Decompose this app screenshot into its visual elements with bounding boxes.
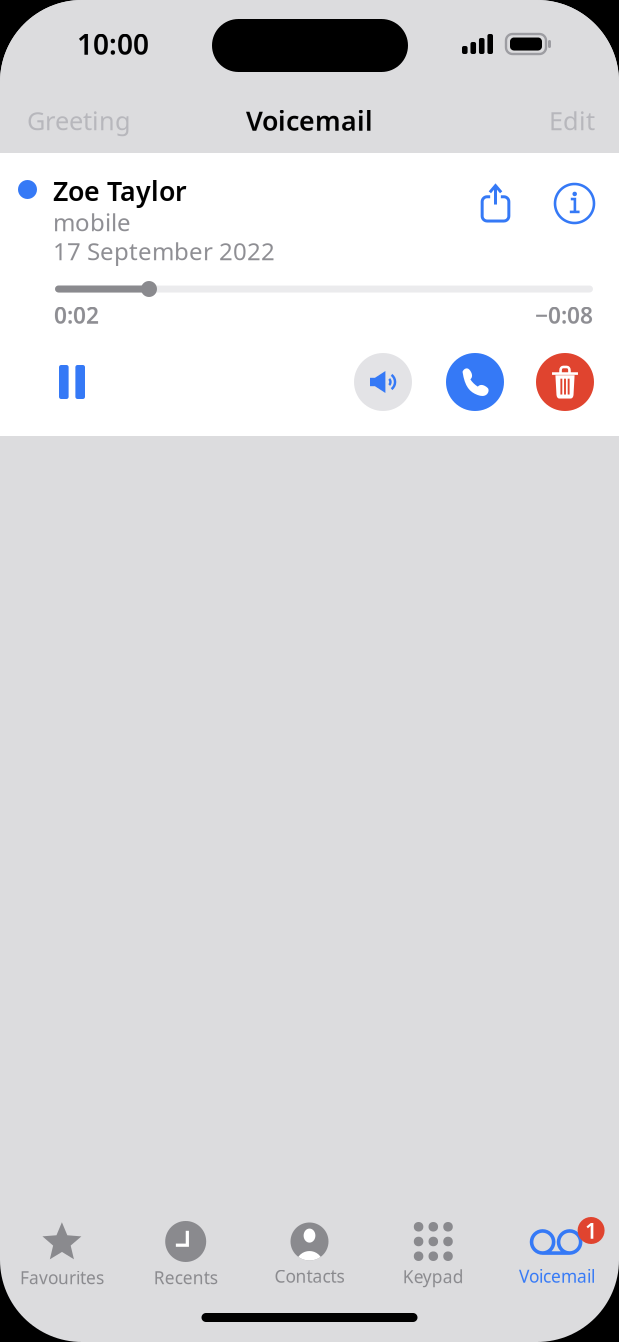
button[interactable]: Pause [41, 349, 103, 415]
staticText: Zoe Taylor [53, 173, 187, 208]
button[interactable]: Share [463, 170, 528, 235]
staticText: Keypad [403, 1265, 464, 1288]
button[interactable]: Contacts [248, 1209, 371, 1301]
button[interactable]: Details [539, 171, 610, 236]
staticText: Voicemail [246, 103, 373, 138]
staticText: 1 [585, 1216, 597, 1245]
button[interactable]: Favourites [0, 1209, 124, 1301]
staticText: 0:02 [54, 300, 99, 330]
button[interactable]: Speaker [354, 353, 412, 411]
button[interactable]: Recents [124, 1209, 248, 1301]
staticText: −0:08 [535, 300, 593, 330]
staticText: 10:00 [77, 25, 149, 63]
button[interactable]: Keypad [371, 1209, 495, 1301]
staticText: Contacts [274, 1264, 344, 1287]
button[interactable]: 1 [495, 1209, 619, 1301]
button[interactable]: Edit [535, 88, 619, 153]
staticText: mobile [53, 206, 131, 238]
staticText: Favourites [20, 1266, 104, 1289]
staticText: Greeting [27, 104, 131, 137]
staticText: Edit [549, 104, 595, 137]
staticText: Recents [154, 1266, 218, 1289]
staticText: Voicemail [519, 1264, 595, 1287]
button[interactable]: Call back [446, 353, 504, 411]
button[interactable]: Greeting [0, 88, 145, 153]
button[interactable]: Delete [536, 353, 594, 411]
staticText: 17 September 2022 [53, 235, 275, 267]
